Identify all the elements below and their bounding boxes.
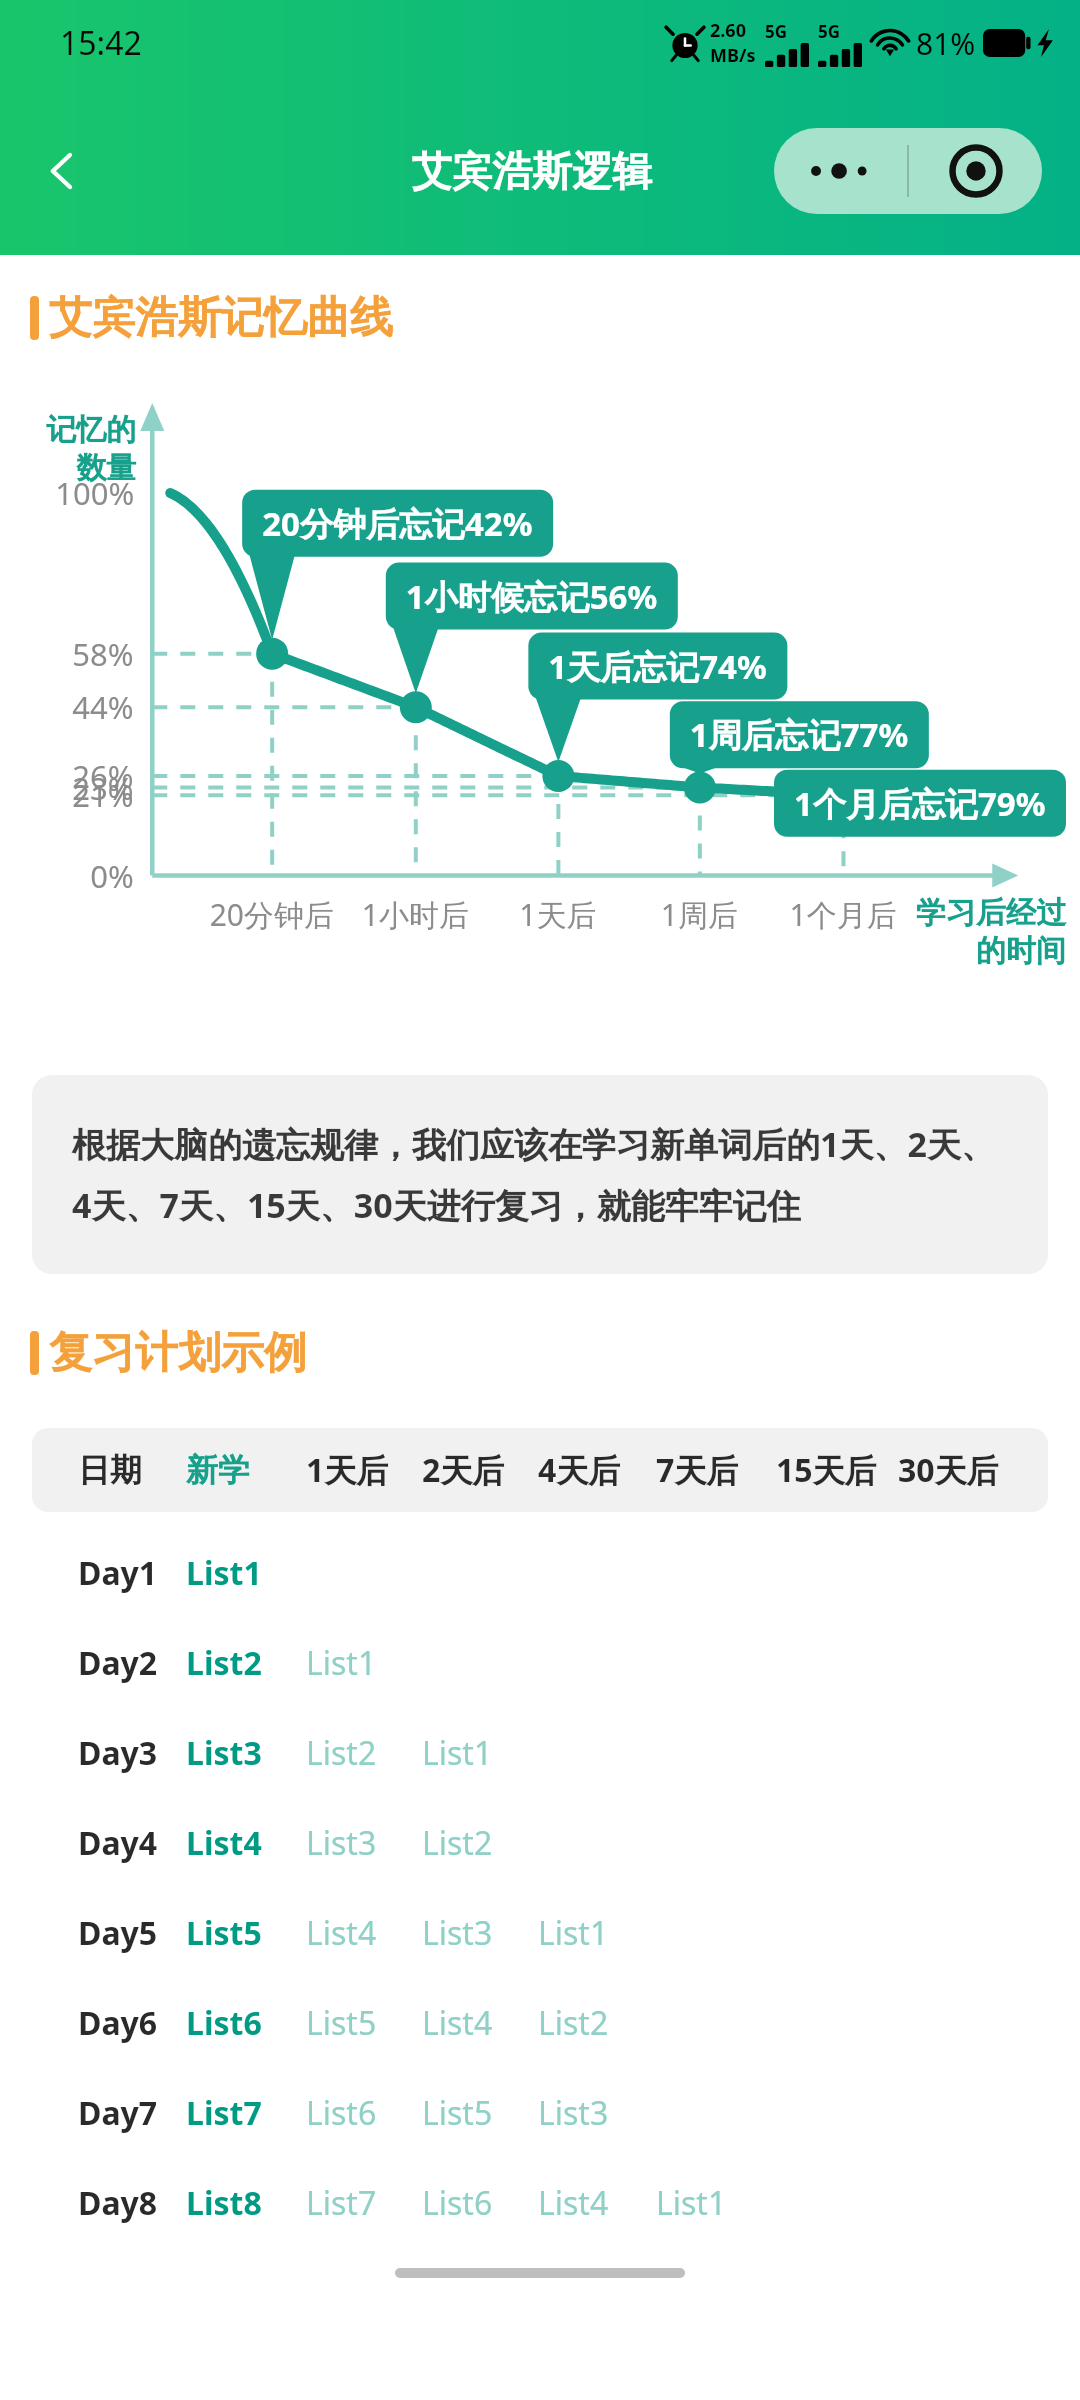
- staticText: List4: [186, 1821, 262, 1865]
- button[interactable]: Day7: [0, 2068, 1080, 2158]
- staticText: List5: [186, 1911, 262, 1955]
- staticText: List1: [306, 1641, 377, 1685]
- button[interactable]: Day2: [0, 1618, 1080, 1708]
- staticText: List1: [656, 2181, 727, 2225]
- staticText: 5G: [765, 20, 788, 43]
- staticText: List2: [422, 1821, 493, 1865]
- staticText: List2: [306, 1731, 377, 1775]
- staticText: List6: [422, 2181, 493, 2225]
- staticText: List1: [422, 1731, 493, 1775]
- staticText: List8: [186, 2181, 262, 2225]
- staticText: Day3: [78, 1731, 158, 1775]
- staticText: 5G: [818, 20, 841, 43]
- button[interactable]: Day5: [0, 1888, 1080, 1978]
- staticText: Day6: [78, 2001, 158, 2045]
- button[interactable]: Back: [22, 131, 102, 211]
- staticText: 艾宾浩斯记忆曲线: [49, 291, 393, 345]
- staticText: List1: [186, 1551, 262, 1595]
- staticText: Day2: [78, 1641, 158, 1685]
- staticText: 日期: [78, 1450, 142, 1490]
- staticText: List6: [186, 2001, 262, 2045]
- staticText: List7: [186, 2091, 262, 2135]
- staticText: List2: [186, 1641, 262, 1685]
- button[interactable]: Day4: [0, 1798, 1080, 1888]
- staticText: 4天后: [538, 1448, 621, 1492]
- staticText: Day8: [78, 2181, 158, 2225]
- staticText: 15:42: [60, 21, 142, 65]
- staticText: MB/s: [710, 43, 756, 68]
- staticText: List5: [306, 2001, 377, 2045]
- staticText: List3: [186, 1731, 262, 1775]
- staticText: List3: [422, 1911, 493, 1955]
- staticText: List7: [306, 2181, 377, 2225]
- button[interactable]: Day8: [0, 2158, 1080, 2248]
- staticText: Day1: [78, 1551, 158, 1595]
- button[interactable]: More options: [774, 128, 907, 214]
- staticText: 1天后: [306, 1448, 389, 1492]
- button[interactable]: Day1: [0, 1528, 1080, 1618]
- staticText: 81%: [916, 23, 976, 64]
- staticText: List6: [306, 2091, 377, 2135]
- staticText: 复习计划示例: [49, 1326, 307, 1380]
- staticText: 30天后: [898, 1448, 999, 1492]
- staticText: 2.60: [710, 18, 746, 43]
- staticText: List3: [306, 1821, 377, 1865]
- staticText: 根据大脑的遗忘规律，我们应该在学习新单词后的1天、2天、4天、7天、15天、30…: [72, 1121, 1008, 1228]
- staticText: 2天后: [422, 1448, 505, 1492]
- button[interactable]: Day6: [0, 1978, 1080, 2068]
- staticText: List4: [422, 2001, 493, 2045]
- staticText: Day7: [78, 2091, 158, 2135]
- staticText: List1: [538, 1911, 609, 1955]
- staticText: Day5: [78, 1911, 158, 1955]
- staticText: List3: [538, 2091, 609, 2135]
- staticText: 15天后: [776, 1448, 877, 1492]
- staticText: 7天后: [656, 1448, 739, 1492]
- staticText: 新学: [186, 1450, 250, 1490]
- button[interactable]: Day3: [0, 1708, 1080, 1798]
- button[interactable]: Close mini program: [909, 128, 1042, 214]
- staticText: List4: [306, 1911, 377, 1955]
- staticText: 艾宾浩斯逻辑: [412, 146, 652, 196]
- staticText: Day4: [78, 1821, 158, 1865]
- staticText: List2: [538, 2001, 609, 2045]
- staticText: List5: [422, 2091, 493, 2135]
- staticText: List4: [538, 2181, 609, 2225]
